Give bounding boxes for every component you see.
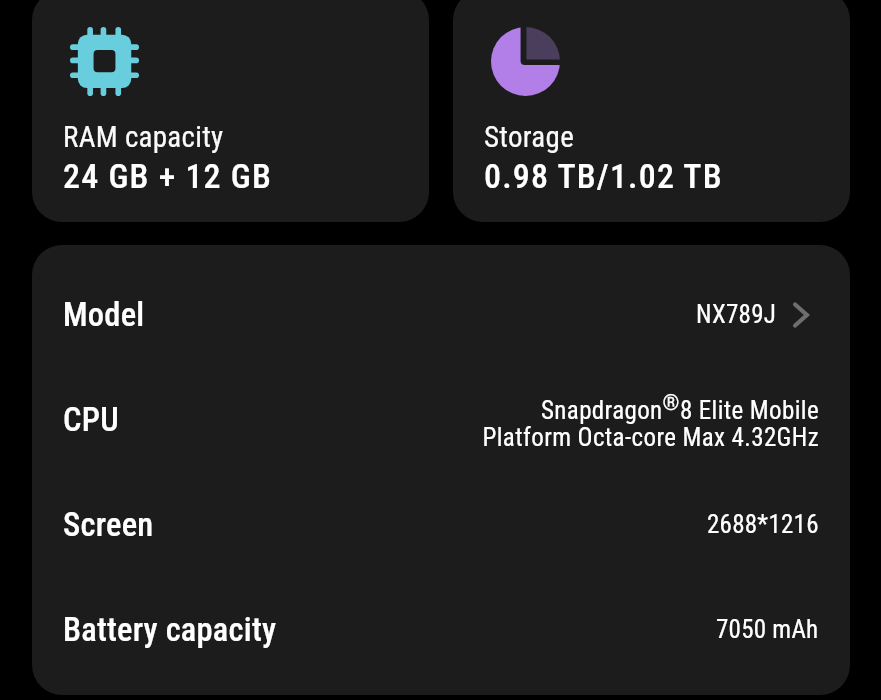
staticText: 0.98 TB/1.02 TB [484, 156, 723, 196]
staticText: CPU [63, 401, 119, 439]
button[interactable]: Model [32, 262, 850, 367]
button[interactable]: Screen [32, 472, 850, 577]
staticText: 7050 mAh [716, 615, 819, 644]
staticText: Snapdragon®8 Elite Mobile Platform Octa-… [479, 390, 819, 452]
button[interactable]: CPU [32, 367, 850, 472]
staticText: Screen [63, 506, 154, 544]
other: Model details [793, 299, 809, 331]
other: RAM [70, 27, 139, 96]
staticText: 24 GB + 12 GB [63, 156, 273, 196]
staticText: Storage [484, 120, 575, 154]
button[interactable]: Storage [453, 0, 850, 222]
staticText: 2688*1216 [707, 510, 819, 539]
button[interactable]: Battery capacity [32, 577, 850, 682]
button[interactable]: RAM [32, 0, 429, 222]
staticText: Model [63, 296, 145, 334]
other: Storage [491, 27, 560, 96]
staticText: Battery capacity [63, 611, 277, 649]
staticText: NX789J [696, 300, 777, 329]
staticText: RAM capacity [63, 120, 224, 154]
